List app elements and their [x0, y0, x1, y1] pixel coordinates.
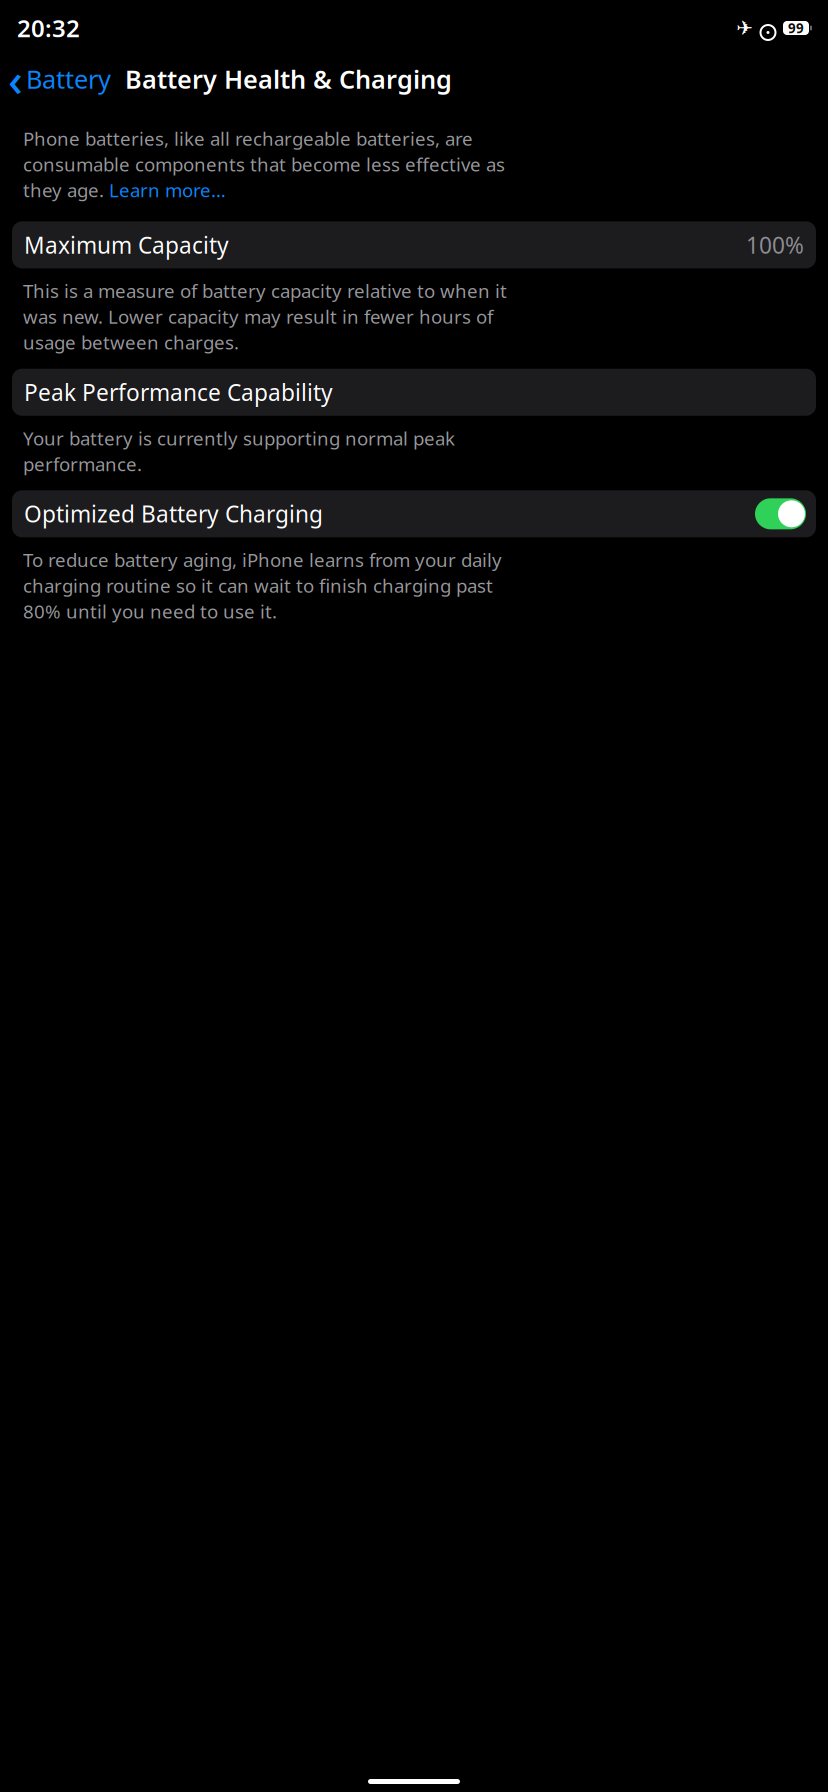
staticText: Optimized Battery Charging: [24, 499, 323, 529]
staticText: usage between charges.: [23, 330, 239, 355]
staticText: Peak Performance Capability: [24, 377, 333, 407]
staticText: Your battery is currently supporting nor…: [23, 426, 455, 450]
staticText: Phone batteries, like all rechargeable b…: [23, 126, 473, 151]
staticText: Battery: [26, 62, 111, 96]
button[interactable]: Peak Performance Capability: [12, 369, 816, 416]
staticText: ‹: [8, 49, 23, 109]
button[interactable]: Optimized Battery Charging: [12, 490, 816, 537]
staticText: Battery Health & Charging: [125, 62, 452, 96]
staticText: 80% until you need to use it.: [23, 599, 277, 624]
staticText: ✈: [736, 17, 753, 39]
staticText: To reduce battery aging, iPhone learns f…: [23, 547, 502, 572]
staticText: This is a measure of battery capacity re…: [23, 278, 507, 303]
button[interactable]: Learn more…: [109, 178, 226, 202]
staticText: consumable components that become less e…: [23, 152, 505, 177]
staticText: performance.: [23, 451, 142, 476]
staticText: 99: [788, 19, 804, 37]
staticText: Learn more…: [109, 178, 226, 202]
staticText: charging routine so it can wait to finis…: [23, 573, 493, 598]
button[interactable]: Maximum Capacity: [12, 221, 816, 268]
staticText: they age.: [23, 178, 109, 202]
staticText: 100%: [746, 230, 804, 260]
staticText: 20:32: [17, 12, 80, 44]
button[interactable]: ‹: [0, 49, 115, 109]
staticText: was new. Lower capacity may result in fe…: [23, 304, 493, 329]
staticText: Maximum Capacity: [24, 230, 229, 260]
